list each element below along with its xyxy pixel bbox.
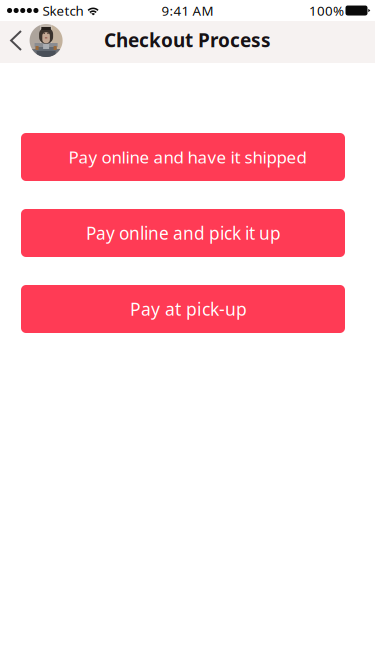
staticText: Pay at pick-up <box>130 297 247 321</box>
button[interactable]: Back <box>0 21 69 63</box>
staticText: Pay online and have it shipped <box>68 145 306 169</box>
staticText: Checkout Process <box>104 27 271 53</box>
button[interactable]: Pay online and have it shipped <box>21 133 345 181</box>
button[interactable]: Pay online and pick it up <box>21 209 345 257</box>
staticText: 100% <box>309 1 344 20</box>
staticText: Sketch <box>42 1 83 20</box>
staticText: 9:41 AM <box>161 1 213 20</box>
staticText: Pay online and pick it up <box>86 221 281 245</box>
button[interactable]: Pay at pick-up <box>21 285 345 333</box>
